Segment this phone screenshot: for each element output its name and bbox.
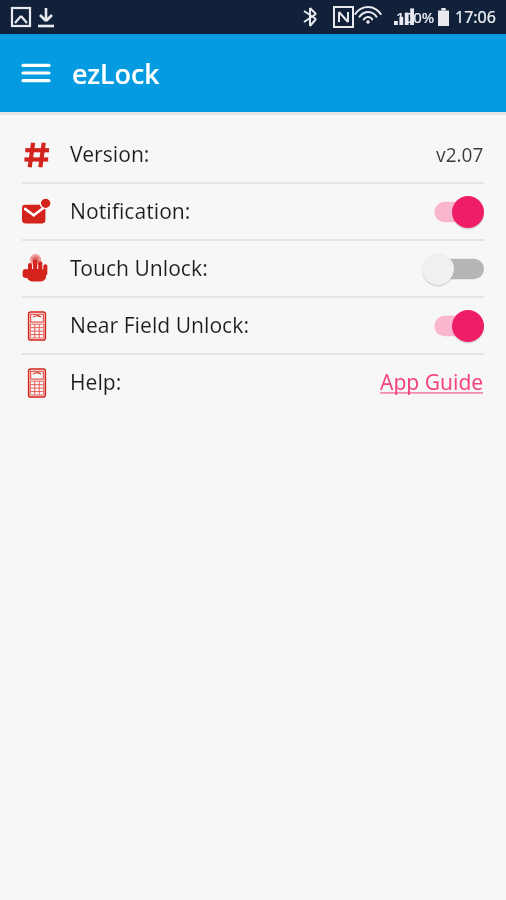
button[interactable]: Notification: [0, 184, 506, 239]
staticText: App Guide [380, 368, 484, 397]
button[interactable]: Help: [0, 355, 506, 410]
button[interactable]: Switch on [422, 195, 484, 229]
staticText: Version: [70, 140, 150, 169]
staticText: Notification: [70, 197, 191, 226]
staticText: Help: [70, 368, 122, 397]
button[interactable]: Near Field Unlock: [0, 298, 506, 353]
button[interactable]: Open navigation menu [14, 51, 58, 95]
staticText: 17:06 [455, 6, 496, 28]
button[interactable]: Version: [0, 127, 506, 182]
button[interactable]: Touch Unlock: [0, 241, 506, 296]
button[interactable]: App Guide [380, 368, 484, 397]
staticText: Touch Unlock: [70, 254, 208, 283]
staticText: Near Field Unlock: [70, 311, 250, 340]
button[interactable]: Switch on [422, 309, 484, 343]
staticText: v2.07 [436, 142, 484, 168]
button[interactable]: Switch off [422, 252, 484, 286]
staticText: ezLock [72, 55, 160, 92]
staticText: 100% [396, 7, 435, 27]
